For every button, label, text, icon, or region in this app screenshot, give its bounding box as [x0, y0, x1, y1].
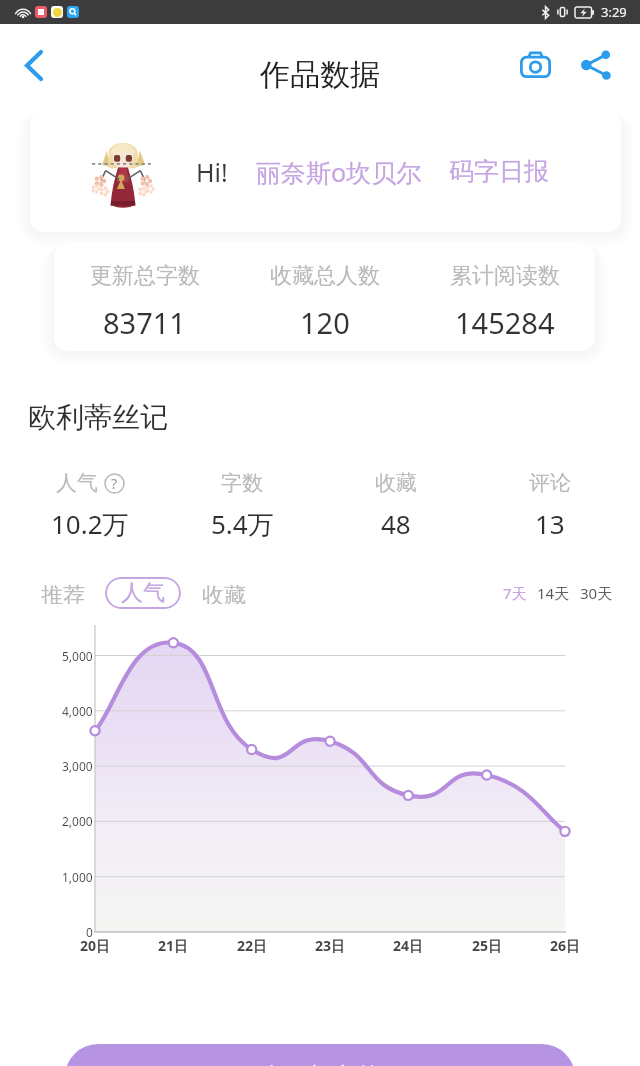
staticText: 83711 [103, 303, 186, 342]
staticText: 收藏 [202, 582, 246, 604]
staticText: 1,000 [62, 869, 93, 885]
staticText: 人气 [56, 470, 98, 496]
staticText: 24日 [393, 936, 424, 955]
staticText: 更新总字数 [90, 262, 200, 290]
staticText: 13 [535, 506, 565, 541]
staticText: 0 [86, 924, 93, 940]
staticText: 5.4万 [211, 506, 274, 542]
staticText: 23日 [315, 936, 346, 955]
button[interactable]: 去写新章节 [65, 1044, 575, 1066]
staticText: 22日 [237, 936, 268, 955]
staticText: 14天 [537, 583, 570, 603]
button[interactable]: Camera [509, 39, 561, 91]
staticText: 30天 [580, 583, 613, 603]
staticText: 作品数据 [260, 56, 380, 94]
staticText: 2,000 [62, 813, 93, 829]
staticText: 120 [300, 303, 350, 342]
staticText: 收藏总人数 [270, 262, 380, 290]
button[interactable]: Share [570, 39, 622, 91]
button[interactable]: 收藏 [195, 577, 253, 609]
staticText: 推荐 [41, 582, 85, 604]
button[interactable]: 14天 [532, 577, 575, 609]
staticText: 去写新章节 [260, 1062, 380, 1066]
button[interactable]: 30天 [575, 577, 618, 609]
staticText: 码字日报 [449, 156, 549, 187]
staticText: 21日 [158, 936, 189, 955]
button[interactable]: Help [104, 473, 125, 494]
staticText: 10.2万 [51, 506, 129, 542]
staticText: 累计阅读数 [450, 262, 560, 290]
button[interactable]: 7天 [498, 577, 532, 609]
staticText: 欧利蒂丝记 [28, 400, 168, 435]
staticText: 7天 [503, 583, 527, 603]
staticText: 5,000 [62, 648, 93, 664]
staticText: 26日 [550, 936, 581, 955]
staticText: 字数 [221, 470, 263, 496]
button[interactable]: Hi! [30, 111, 621, 232]
button[interactable]: 人气 [105, 577, 181, 609]
staticText: Hi! [196, 155, 228, 189]
button[interactable]: 推荐 [34, 577, 92, 609]
button[interactable]: Back [8, 39, 60, 91]
staticText: 25日 [472, 936, 503, 955]
staticText: 4,000 [62, 703, 93, 719]
staticText: ? [111, 474, 118, 493]
staticText: 48 [381, 506, 411, 541]
staticText: 收藏 [375, 470, 417, 496]
staticText: 20日 [80, 936, 111, 955]
staticText: 145284 [455, 303, 555, 342]
staticText: 3:29 [601, 3, 627, 21]
staticText: 评论 [529, 470, 571, 496]
staticText: 人气 [121, 579, 165, 607]
staticText: 丽奈斯o坎贝尔 [256, 155, 422, 189]
staticText: 3,000 [62, 758, 93, 774]
